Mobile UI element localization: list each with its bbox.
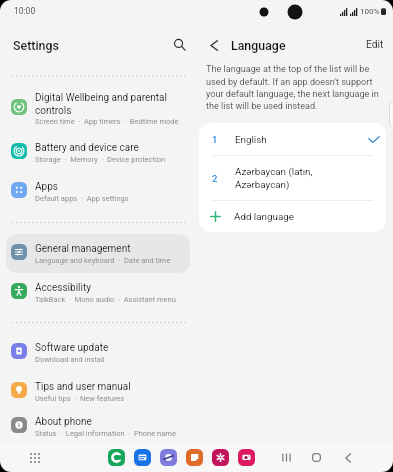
staticText: The language at the top of the list will… <box>206 64 382 111</box>
button[interactable]: Phone <box>108 449 125 466</box>
button[interactable]: Internet <box>160 449 177 466</box>
staticText: Default apps · App settings <box>35 194 129 203</box>
staticText: 1 <box>212 134 218 145</box>
staticText: Language and keyboard · Date and time <box>35 256 171 265</box>
button[interactable]: Recent apps <box>276 447 297 468</box>
button[interactable]: Back <box>337 447 358 468</box>
button[interactable]: Camera <box>238 449 255 466</box>
button[interactable]: Accessibility <box>6 273 190 312</box>
button[interactable]: Search <box>167 32 193 58</box>
staticText: Screen time · App timers · Bedtime mode <box>35 117 179 126</box>
button[interactable]: About phone <box>6 411 190 443</box>
staticText: Download and install <box>35 355 105 364</box>
button[interactable]: Edit <box>357 34 393 56</box>
staticText: Accessibility <box>35 282 91 294</box>
staticText: English <box>235 134 368 145</box>
staticText: Tips and user manual <box>35 381 131 393</box>
button[interactable]: 1 <box>199 123 386 155</box>
staticText: Azərbaycan (latın, Azərbaycan) <box>235 166 380 190</box>
staticText: Language <box>231 38 286 53</box>
button[interactable]: General management <box>6 234 190 273</box>
button[interactable]: Messages <box>134 449 151 466</box>
staticText: Edit <box>366 39 384 51</box>
button[interactable]: Digital Wellbeing and parental controls <box>6 84 190 133</box>
button[interactable]: Software update <box>6 333 190 372</box>
button[interactable]: Back <box>203 34 225 56</box>
button[interactable]: Tips and user manual <box>6 372 190 411</box>
staticText: 100% <box>360 7 380 16</box>
staticText: Settings <box>13 38 59 53</box>
staticText: Add language <box>234 211 294 222</box>
staticText: Useful tips · New features <box>35 394 125 403</box>
staticText: About phone <box>35 416 92 428</box>
button[interactable]: Home <box>306 447 327 468</box>
staticText: Status · Legal information · Phone name <box>35 429 176 438</box>
staticText: Digital Wellbeing and parental controls <box>35 92 184 116</box>
button[interactable]: Apps <box>24 447 45 468</box>
button[interactable]: Galaxy Store <box>212 449 229 466</box>
staticText: General management <box>35 243 131 255</box>
staticText: Apps <box>35 181 58 193</box>
button[interactable]: 2 <box>199 156 386 200</box>
button[interactable]: Notes <box>186 449 203 466</box>
staticText: Battery and device care <box>35 142 139 154</box>
staticText: Storage · Memory · Device protection <box>35 155 166 164</box>
button[interactable]: Add language <box>199 201 386 232</box>
staticText: Software update <box>35 342 109 354</box>
button[interactable]: Apps <box>6 172 190 211</box>
staticText: 10:00 <box>14 6 36 16</box>
button[interactable]: Battery and device care <box>6 133 190 172</box>
staticText: 2 <box>212 173 218 184</box>
staticText: TalkBack · Mono audio · Assistant menu <box>35 295 176 304</box>
